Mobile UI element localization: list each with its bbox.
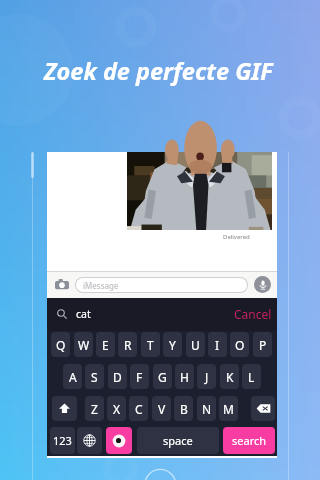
button[interactable]: W — [74, 332, 93, 357]
staticText: Z — [91, 401, 98, 417]
button[interactable]: 123 — [50, 427, 75, 454]
button[interactable]: Camera — [53, 276, 70, 293]
staticText: D — [113, 369, 122, 385]
button[interactable]: H — [175, 364, 194, 389]
button[interactable]: L — [242, 364, 261, 389]
staticText: R — [124, 337, 132, 353]
staticText: S — [91, 369, 98, 385]
button[interactable] — [52, 396, 77, 421]
staticText: Cancel — [234, 306, 272, 322]
button[interactable]: search — [223, 427, 275, 454]
staticText: I — [215, 337, 220, 353]
staticText: H — [180, 369, 189, 385]
button[interactable]: F — [130, 364, 149, 389]
button[interactable] — [106, 427, 132, 454]
button[interactable] — [77, 427, 102, 454]
staticText: E — [102, 337, 109, 353]
staticText: K — [226, 369, 234, 385]
staticText: C — [135, 401, 143, 417]
button[interactable]: iMessage — [76, 278, 247, 292]
button[interactable]: T — [141, 332, 160, 357]
staticText: G — [158, 369, 167, 385]
button[interactable]: E — [96, 332, 115, 357]
staticText: W — [78, 337, 90, 353]
button[interactable]: J — [197, 364, 216, 389]
staticText: N — [202, 401, 212, 417]
staticText: Q — [56, 337, 66, 353]
button[interactable]: A — [63, 364, 82, 389]
staticText: X — [113, 401, 121, 417]
staticText: O — [235, 337, 245, 353]
staticText: J — [205, 369, 209, 385]
button[interactable]: C — [129, 396, 148, 421]
staticText: L — [248, 369, 255, 385]
staticText: P — [259, 337, 267, 353]
button[interactable]: S — [85, 364, 104, 389]
staticText: T — [147, 337, 154, 353]
staticText: A — [69, 369, 77, 385]
staticText: M — [223, 401, 234, 417]
staticText: U — [191, 337, 200, 353]
staticText: B — [180, 401, 188, 417]
button[interactable]: Cancel — [234, 306, 272, 322]
staticText: iMessage — [83, 280, 119, 291]
button[interactable]: R — [118, 332, 137, 357]
button[interactable]: X — [107, 396, 126, 421]
staticText: F — [136, 369, 143, 385]
button[interactable]: G — [153, 364, 172, 389]
button[interactable]: Y — [163, 332, 182, 357]
button[interactable]: O — [230, 332, 249, 357]
button[interactable]: space — [137, 427, 219, 454]
button[interactable]: Microphone — [254, 276, 271, 293]
button[interactable]: P — [253, 332, 272, 357]
button[interactable]: Q — [51, 332, 70, 357]
staticText: 123 — [53, 433, 72, 448]
staticText: space — [163, 433, 193, 448]
button[interactable]: V — [152, 396, 171, 421]
button[interactable]: N — [197, 396, 216, 421]
button[interactable]: B — [174, 396, 193, 421]
staticText: search — [232, 433, 267, 448]
staticText: cat — [76, 307, 91, 321]
button[interactable]: K — [220, 364, 239, 389]
button[interactable]: D — [108, 364, 127, 389]
staticText: V — [158, 401, 166, 417]
staticText: Delivered — [223, 233, 250, 241]
button[interactable] — [251, 396, 275, 421]
button[interactable]: I — [208, 332, 227, 357]
button[interactable]: Z — [85, 396, 104, 421]
staticText: Y — [169, 337, 176, 353]
button[interactable]: U — [186, 332, 205, 357]
staticText: Zoek de perfecte GIF — [44, 55, 273, 87]
button[interactable]: M — [219, 396, 238, 421]
